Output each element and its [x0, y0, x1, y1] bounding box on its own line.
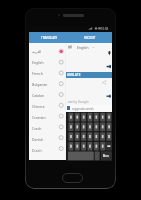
button[interactable]: Catalan: [29, 90, 66, 101]
staticText: Chinese: [32, 104, 45, 109]
button[interactable]: Bulgarian: [29, 79, 66, 90]
staticText: English: [32, 60, 44, 65]
button[interactable]: Send: [106, 64, 112, 69]
staticText: Czech: [32, 126, 42, 131]
button[interactable]: Croatian: [29, 112, 66, 123]
button[interactable]: العربية: [29, 46, 66, 57]
staticText: 10:58: [101, 27, 109, 31]
button[interactable]: English: [29, 57, 66, 68]
button[interactable]: Czech: [29, 123, 66, 134]
staticText: Catalan: [32, 93, 45, 98]
staticText: Dutch: [32, 148, 42, 153]
staticText: English: [77, 45, 89, 50]
button[interactable]: Home: [62, 173, 83, 183]
button[interactable]: [106, 94, 112, 99]
button[interactable]: French: [29, 68, 66, 79]
staticText: Bulgarian: [32, 82, 48, 87]
button[interactable]: Danish: [29, 134, 66, 145]
staticText: French: [32, 71, 43, 76]
staticText: ANSLATE: [67, 73, 81, 77]
button[interactable]: ANSLATE: [66, 72, 112, 78]
button[interactable]: Dutch: [29, 145, 66, 156]
staticText: Croatian: [32, 115, 46, 120]
button[interactable]: TRANSLATE: [33, 32, 66, 43]
staticText: suggestion words: [72, 107, 94, 111]
staticText: TRANSLATE: [41, 36, 58, 40]
staticText: ate by Google: [68, 100, 89, 104]
button[interactable]: English: [66, 44, 112, 50]
staticText: Danish: [32, 137, 44, 142]
staticText: العربية: [32, 50, 42, 54]
staticText: RECENT: [84, 36, 96, 40]
button[interactable]: RECENT: [75, 32, 105, 43]
button[interactable]: Share: [102, 80, 107, 85]
button[interactable]: Voice input: [107, 50, 112, 56]
button[interactable]: Chinese: [29, 101, 66, 112]
